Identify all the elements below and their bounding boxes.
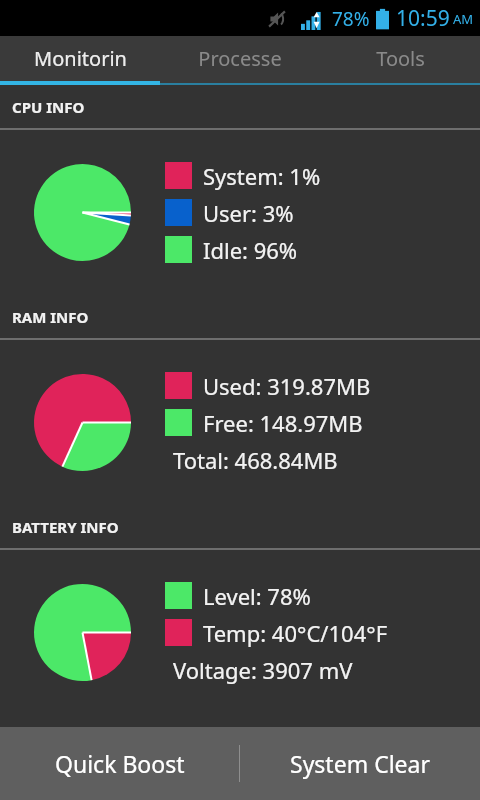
staticText: Free: 148.97MB bbox=[203, 408, 363, 438]
button[interactable]: Processe bbox=[160, 36, 320, 81]
staticText: Processe bbox=[198, 45, 282, 72]
staticText: CPU INFO bbox=[12, 97, 85, 117]
button[interactable]: Tools bbox=[320, 36, 480, 81]
staticText: BATTERY INFO bbox=[12, 517, 119, 537]
staticText: User: 3% bbox=[203, 198, 294, 228]
staticText: Level: 78% bbox=[203, 581, 311, 611]
staticText: Idle: 96% bbox=[203, 235, 298, 265]
staticText: 10:59 bbox=[396, 4, 450, 33]
staticText: Temp: 40°C/104°F bbox=[203, 618, 388, 648]
staticText: Total: 468.84MB bbox=[173, 445, 338, 475]
staticText: Used: 319.87MB bbox=[203, 371, 371, 401]
staticText: Quick Boost bbox=[55, 748, 185, 779]
staticText: System Clear bbox=[290, 748, 430, 779]
button[interactable]: Monitorin bbox=[0, 36, 160, 81]
button[interactable]: Quick Boost bbox=[0, 727, 239, 800]
staticText: 78% bbox=[332, 6, 370, 32]
staticText: Monitorin bbox=[34, 45, 127, 72]
staticText: AM bbox=[453, 10, 474, 28]
staticText: Voltage: 3907 mV bbox=[173, 655, 353, 685]
staticText: System: 1% bbox=[203, 161, 321, 191]
staticText: RAM INFO bbox=[12, 307, 89, 327]
button[interactable]: System Clear bbox=[240, 727, 480, 800]
staticText: Tools bbox=[376, 45, 425, 72]
